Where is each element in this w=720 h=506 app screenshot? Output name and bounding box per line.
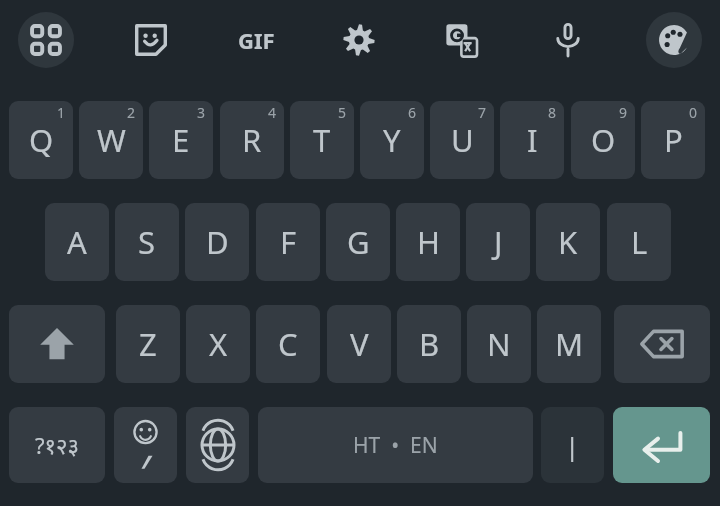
button[interactable]: G: [326, 203, 390, 281]
button[interactable]: O: [571, 101, 635, 179]
button[interactable]: Translate: [434, 12, 490, 68]
button[interactable]: Y: [360, 101, 424, 179]
staticText: 2: [127, 103, 136, 122]
staticText: B: [419, 323, 440, 365]
button[interactable]: C: [256, 305, 320, 383]
staticText: 5: [338, 103, 347, 122]
staticText: 8: [548, 103, 557, 122]
button[interactable]: Enter: [613, 407, 710, 483]
staticText: A: [67, 221, 87, 263]
button[interactable]: Stickers: [123, 12, 179, 68]
button[interactable]: Shift: [9, 305, 105, 383]
staticText: J: [494, 221, 503, 263]
button[interactable]: F: [256, 203, 320, 281]
button[interactable]: A: [45, 203, 109, 281]
staticText: U: [451, 119, 474, 161]
button[interactable]: R: [220, 101, 284, 179]
staticText: Y: [383, 119, 401, 161]
staticText: F: [280, 221, 297, 263]
button[interactable]: |: [541, 407, 604, 483]
button[interactable]: L: [607, 203, 671, 281]
staticText: K: [558, 221, 578, 263]
staticText: ?१२३: [35, 430, 79, 460]
staticText: S: [138, 221, 156, 263]
button[interactable]: M: [537, 305, 601, 383]
button[interactable]: P: [641, 101, 705, 179]
staticText: HT • EN: [353, 431, 438, 460]
staticText: L: [631, 221, 648, 263]
staticText: |: [565, 428, 580, 463]
staticText: 6: [408, 103, 417, 122]
staticText: 0: [689, 103, 698, 122]
button[interactable]: Z: [116, 305, 180, 383]
button[interactable]: Theme: [646, 12, 702, 68]
button[interactable]: E: [149, 101, 213, 179]
staticText: X: [209, 323, 228, 365]
staticText: V: [350, 323, 369, 365]
button[interactable]: GIF: [228, 14, 284, 66]
staticText: N: [487, 323, 511, 365]
button[interactable]: Settings: [331, 12, 387, 68]
staticText: E: [172, 119, 190, 161]
staticText: I: [527, 119, 538, 161]
button[interactable]: D: [185, 203, 249, 281]
staticText: GIF: [238, 25, 275, 55]
button[interactable]: ?१२३: [9, 407, 105, 483]
button[interactable]: W: [79, 101, 143, 179]
button[interactable]: T: [290, 101, 354, 179]
staticText: R: [242, 119, 262, 161]
button[interactable]: V: [327, 305, 391, 383]
button[interactable]: I: [500, 101, 564, 179]
staticText: C: [278, 323, 298, 365]
button[interactable]: H: [396, 203, 460, 281]
staticText: 7: [478, 103, 487, 122]
staticText: W: [97, 119, 126, 161]
staticText: D: [206, 221, 229, 263]
staticText: 9: [619, 103, 628, 122]
button[interactable]: S: [115, 203, 179, 281]
button[interactable]: U: [430, 101, 494, 179]
staticText: O: [591, 119, 616, 161]
button[interactable]: N: [467, 305, 531, 383]
button[interactable]: Emoji: [114, 407, 177, 483]
button[interactable]: K: [536, 203, 600, 281]
button[interactable]: Voice input: [540, 12, 596, 68]
staticText: Z: [139, 323, 157, 365]
staticText: T: [313, 119, 331, 161]
button[interactable]: Change language: [186, 407, 249, 483]
button[interactable]: Keyboard apps: [18, 12, 74, 68]
staticText: Q: [29, 119, 54, 161]
staticText: 3: [197, 103, 206, 122]
button[interactable]: Backspace: [614, 305, 710, 383]
staticText: H: [417, 221, 440, 263]
button[interactable]: X: [186, 305, 250, 383]
button[interactable]: HT • EN: [258, 407, 533, 483]
button[interactable]: J: [466, 203, 530, 281]
staticText: P: [664, 119, 683, 161]
staticText: 4: [268, 103, 277, 122]
button[interactable]: B: [397, 305, 461, 383]
staticText: G: [347, 221, 370, 263]
staticText: 1: [57, 103, 66, 122]
staticText: M: [555, 323, 584, 365]
button[interactable]: Q: [9, 101, 73, 179]
